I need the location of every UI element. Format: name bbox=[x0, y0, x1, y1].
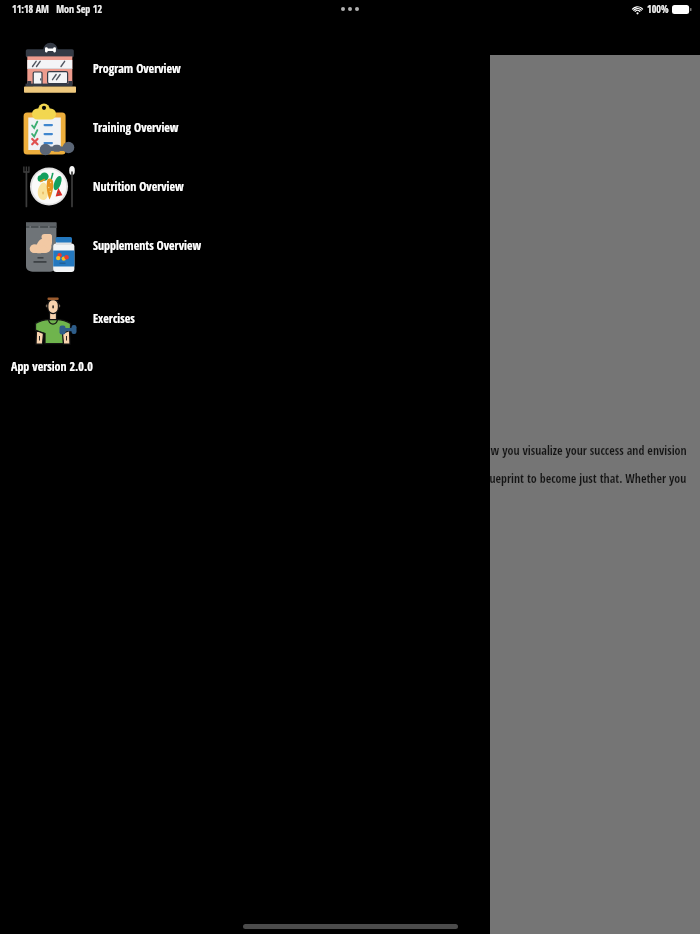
staticText: Training Overview bbox=[93, 119, 179, 135]
staticText: A vision board is all about how you visu… bbox=[353, 442, 687, 458]
button[interactable]: Program Overview bbox=[0, 38, 490, 97]
button[interactable]: Nutrition Overview bbox=[0, 156, 490, 215]
staticText: Nutrition Overview bbox=[93, 178, 184, 194]
staticText: 100% bbox=[647, 2, 669, 16]
staticText: 11:18 AM Mon Sep 12 bbox=[12, 2, 103, 16]
staticText: Program Overview bbox=[93, 60, 181, 76]
staticText: Exercises bbox=[93, 310, 135, 326]
staticText: Supplements Overview bbox=[93, 237, 202, 253]
button[interactable]: Supplements Overview bbox=[0, 215, 490, 274]
staticText: what you want, and then creating a bluep… bbox=[308, 470, 687, 486]
staticText: App version 2.0.0 bbox=[11, 358, 93, 374]
button[interactable]: Exercises bbox=[0, 288, 490, 347]
button[interactable]: Training Overview bbox=[0, 97, 490, 156]
